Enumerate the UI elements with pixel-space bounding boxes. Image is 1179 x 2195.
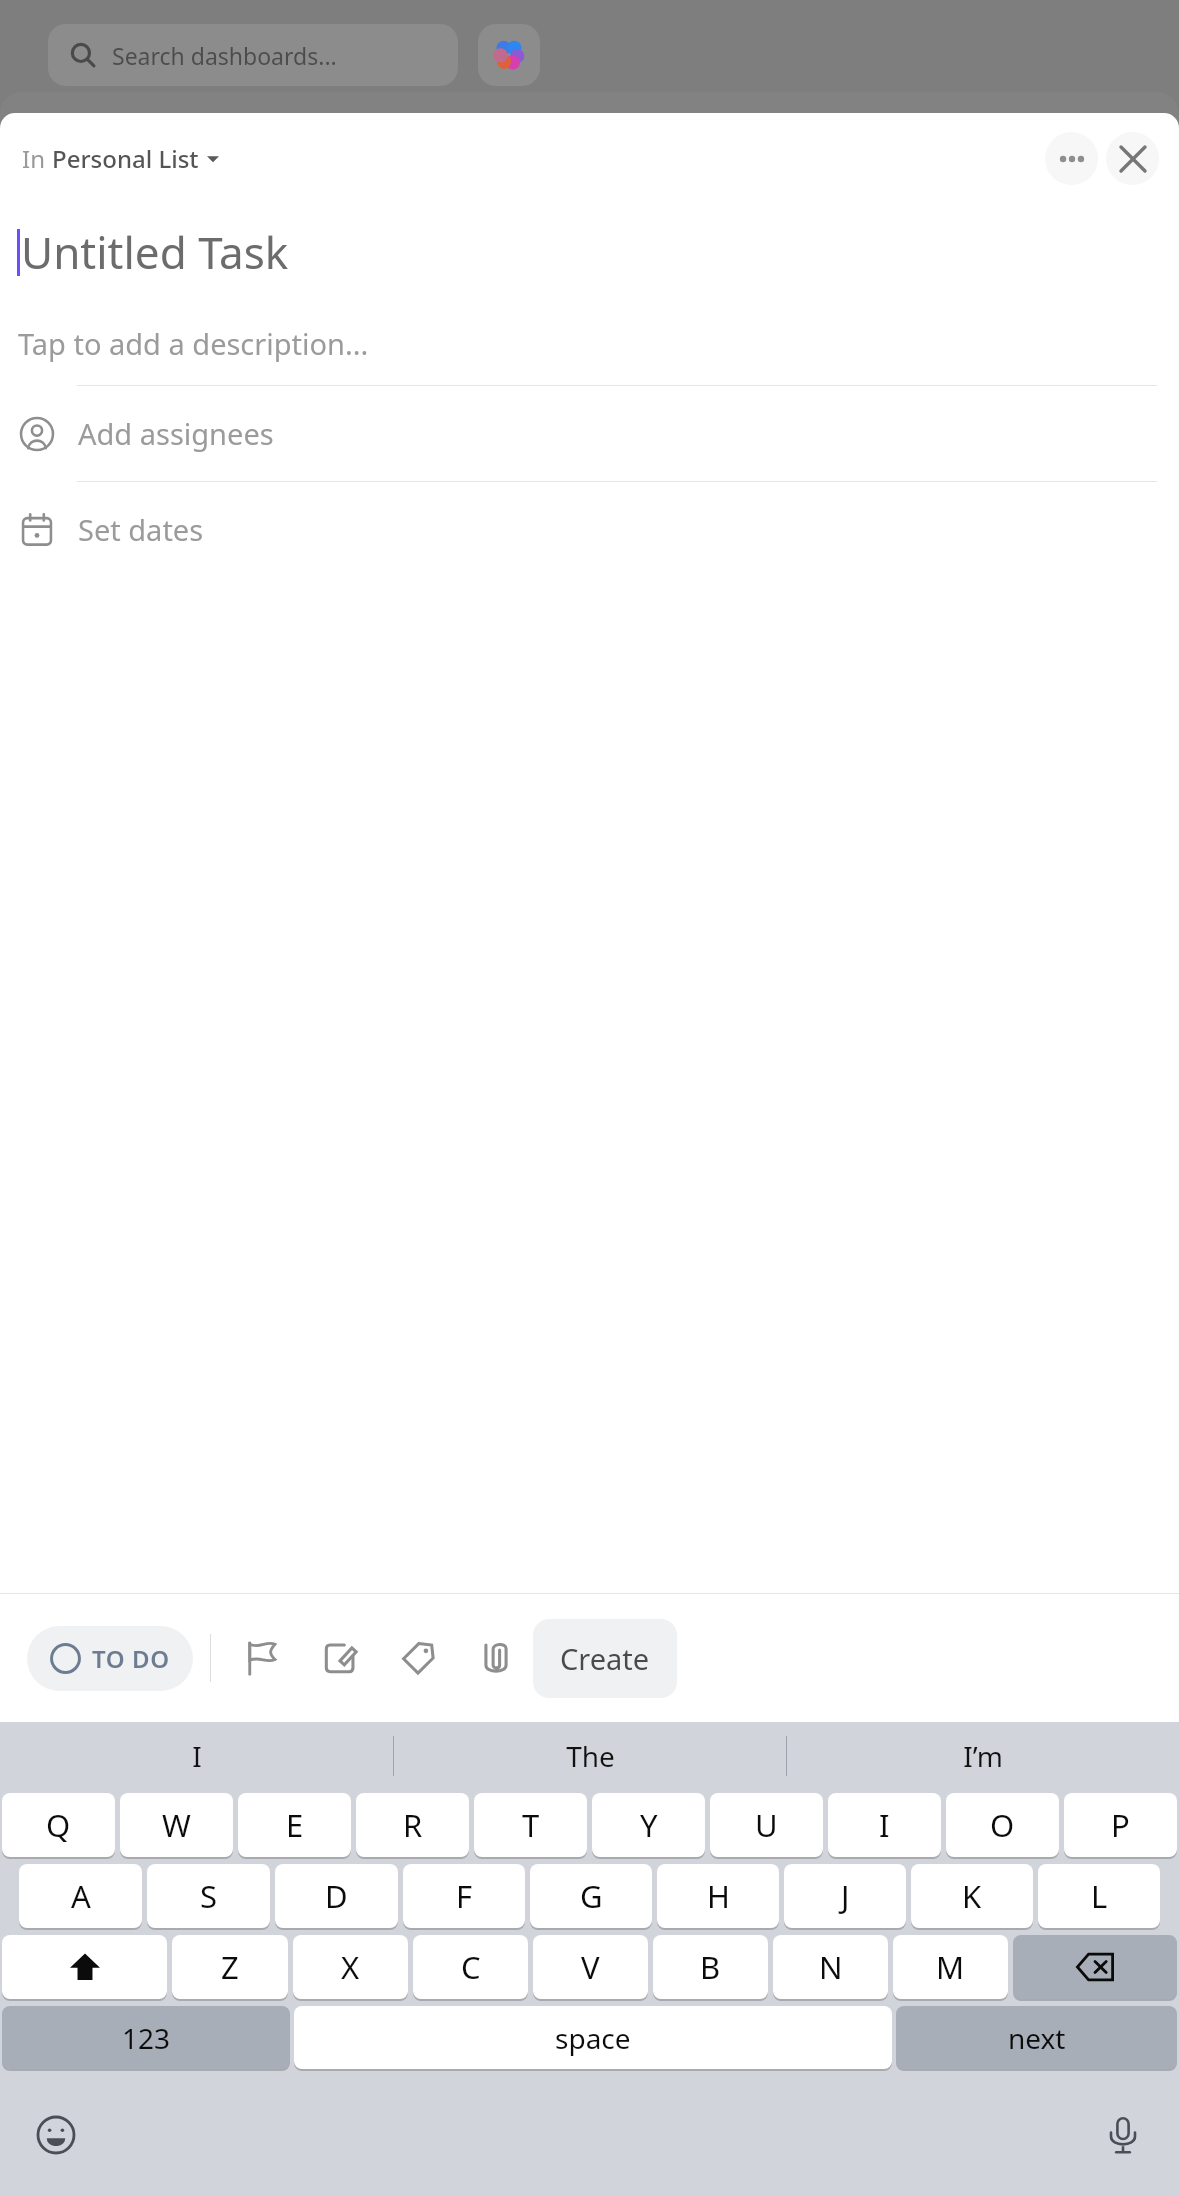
staticText: H	[707, 1875, 730, 1917]
button[interactable]: Y	[592, 1793, 705, 1857]
staticText: D	[325, 1875, 348, 1917]
button[interactable]: L	[1038, 1864, 1160, 1928]
staticText: Tap to add a description...	[18, 324, 369, 363]
staticText: U	[755, 1804, 778, 1846]
staticText: I	[879, 1804, 890, 1846]
button[interactable]: K	[911, 1864, 1033, 1928]
button[interactable]: Voice input	[1095, 2107, 1151, 2163]
button[interactable]: next	[896, 2006, 1177, 2069]
button[interactable]: Search dashboards...	[48, 24, 458, 86]
button[interactable]: Tap to add a description...	[0, 301, 1179, 385]
button[interactable]: Attach file	[469, 1631, 523, 1685]
button[interactable]: Close	[1106, 132, 1159, 185]
staticText: Add assignees	[78, 414, 274, 453]
button[interactable]: G	[530, 1864, 652, 1928]
button[interactable]: Edit	[313, 1631, 367, 1685]
button[interactable]: Add tags	[391, 1631, 445, 1685]
button[interactable]: U	[710, 1793, 823, 1857]
staticText: K	[962, 1875, 982, 1917]
staticText: J	[841, 1875, 850, 1917]
staticText: A	[71, 1875, 91, 1917]
staticText: C	[461, 1946, 481, 1988]
staticText: Create	[560, 1639, 650, 1678]
staticText: S	[200, 1875, 218, 1917]
staticText: M	[936, 1946, 965, 1988]
button[interactable]: Set priority	[235, 1631, 289, 1685]
button[interactable]: I	[0, 1722, 393, 1790]
staticText: Set dates	[78, 510, 204, 549]
button[interactable]: C	[413, 1935, 528, 1999]
staticText: R	[403, 1804, 423, 1846]
button[interactable]: J	[784, 1864, 906, 1928]
staticText: Z	[221, 1946, 239, 1988]
staticText: P	[1111, 1804, 1130, 1846]
button[interactable]: The	[394, 1722, 786, 1790]
staticText: N	[819, 1946, 843, 1988]
button[interactable]: O	[946, 1793, 1059, 1857]
staticText: F	[456, 1875, 473, 1917]
staticText: W	[162, 1804, 191, 1846]
staticText: In	[22, 142, 52, 175]
button[interactable]: H	[657, 1864, 779, 1928]
staticText: The	[566, 1737, 615, 1775]
button[interactable]: Set dates	[0, 482, 1179, 577]
button[interactable]: W	[120, 1793, 233, 1857]
button[interactable]: F	[403, 1864, 525, 1928]
staticText: Untitled Task	[21, 222, 289, 282]
staticText: B	[700, 1946, 721, 1988]
button[interactable]: Add assignees	[0, 386, 1179, 481]
button[interactable]: I	[828, 1793, 941, 1857]
button[interactable]: X	[293, 1935, 408, 1999]
button[interactable]: space	[294, 2006, 892, 2069]
button[interactable]: More options	[1045, 132, 1098, 185]
button[interactable]: T	[474, 1793, 587, 1857]
button[interactable]: V	[533, 1935, 648, 1999]
button[interactable]: Create	[533, 1619, 677, 1698]
staticText: space	[555, 2019, 631, 2057]
button[interactable]: N	[773, 1935, 888, 1999]
button[interactable]: In	[18, 136, 223, 181]
staticText: L	[1091, 1875, 1108, 1917]
button[interactable]: R	[356, 1793, 469, 1857]
staticText: 123	[122, 2019, 171, 2057]
staticText: E	[286, 1804, 304, 1846]
staticText: Y	[640, 1804, 658, 1846]
button[interactable]: D	[275, 1864, 398, 1928]
staticText: O	[990, 1804, 1015, 1846]
button[interactable]: P	[1064, 1793, 1177, 1857]
button[interactable]: Emoji	[28, 2107, 84, 2163]
button[interactable]: S	[147, 1864, 270, 1928]
button[interactable]: TO DO	[27, 1626, 193, 1691]
staticText: I	[192, 1737, 202, 1775]
staticText: next	[1008, 2019, 1066, 2057]
button[interactable]: B	[653, 1935, 768, 1999]
button[interactable]: A	[19, 1864, 142, 1928]
staticText: Personal List	[52, 142, 199, 175]
staticText: V	[581, 1946, 600, 1988]
staticText: Search dashboards...	[112, 40, 337, 71]
button[interactable]: Q	[2, 1793, 115, 1857]
button[interactable]: Backspace	[1013, 1935, 1177, 1999]
button[interactable]: Untitled Task	[0, 203, 1179, 301]
button[interactable]: I’m	[787, 1722, 1179, 1790]
button[interactable]: Z	[172, 1935, 288, 1999]
staticText: X	[341, 1946, 360, 1988]
button[interactable]: Profile	[478, 24, 540, 86]
button[interactable]: 123	[2, 2006, 290, 2069]
staticText: I’m	[963, 1737, 1003, 1775]
staticText: TO DO	[92, 1642, 170, 1675]
staticText: Q	[46, 1804, 71, 1846]
button[interactable]: M	[893, 1935, 1008, 1999]
staticText: G	[580, 1875, 603, 1917]
button[interactable]: E	[238, 1793, 351, 1857]
button[interactable]: Shift	[2, 1935, 167, 1999]
staticText: T	[522, 1804, 540, 1846]
